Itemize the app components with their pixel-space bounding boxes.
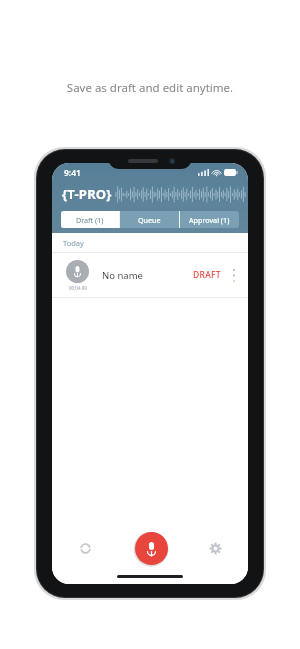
button[interactable]: Sync	[52, 526, 118, 570]
staticText: 9:41	[64, 167, 81, 179]
staticText: Today	[63, 238, 84, 248]
button[interactable]: Settings	[183, 526, 248, 570]
staticText: {T-PRO}	[62, 185, 112, 203]
staticText: Save as draft and edit anytime.	[0, 80, 300, 96]
button[interactable]: More options	[228, 262, 240, 288]
button[interactable]: Record	[135, 532, 168, 565]
button[interactable]: Queue	[120, 211, 179, 228]
staticText: DRAFT	[193, 269, 221, 281]
staticText: Draft (1)	[76, 215, 104, 225]
staticText: No name	[102, 269, 143, 282]
staticText: Queue	[138, 215, 161, 225]
button[interactable]: Draft (1)	[61, 211, 119, 228]
staticText: 00:04.99	[69, 285, 87, 291]
button[interactable]: Approval (1)	[180, 211, 239, 228]
staticText: Approval (1)	[189, 215, 230, 225]
button[interactable]: 00:04.99	[52, 253, 248, 297]
